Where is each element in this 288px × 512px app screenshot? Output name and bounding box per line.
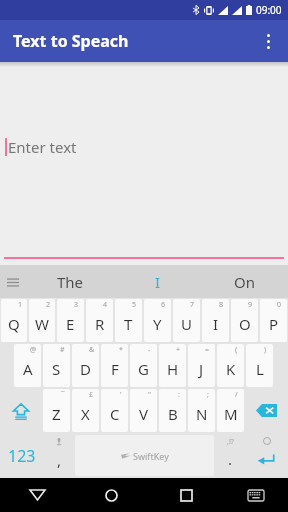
button[interactable]: , xyxy=(45,434,73,477)
button[interactable]: + xyxy=(159,344,186,387)
button[interactable]: £ xyxy=(72,389,99,432)
button[interactable]: 4 xyxy=(86,299,113,342)
staticText: E xyxy=(66,314,75,334)
button[interactable]: 6 xyxy=(144,299,171,342)
staticText: N xyxy=(196,404,208,424)
button[interactable]: Shift xyxy=(1,389,41,432)
staticText: = xyxy=(205,345,210,355)
button[interactable]: 0 xyxy=(260,299,287,342)
button[interactable]: ¯ xyxy=(43,389,70,432)
staticText: - xyxy=(148,345,151,355)
staticText: : xyxy=(178,390,180,400)
button[interactable]: # xyxy=(43,344,70,387)
staticText: . xyxy=(228,449,233,469)
button[interactable]: ,!? xyxy=(216,434,244,477)
button[interactable]: 5 xyxy=(115,299,142,342)
staticText: # xyxy=(60,345,65,355)
staticText: 3 xyxy=(74,300,79,310)
button[interactable]: : xyxy=(159,389,186,432)
staticText: ( xyxy=(235,345,238,355)
staticText: The xyxy=(57,272,84,292)
staticText: A xyxy=(23,359,33,379)
staticText: On xyxy=(234,272,255,292)
staticText: , xyxy=(57,450,62,470)
staticText: 6 xyxy=(161,300,166,310)
staticText: ; xyxy=(207,390,209,400)
staticText: 0 xyxy=(277,300,282,310)
staticText: Z xyxy=(52,404,61,424)
button[interactable]: ' xyxy=(101,389,128,432)
staticText: Enter text xyxy=(8,137,77,157)
staticText: P xyxy=(269,314,279,334)
staticText: & xyxy=(89,345,95,355)
staticText: M xyxy=(224,404,238,424)
staticText: W xyxy=(35,314,49,334)
button[interactable]: 8 xyxy=(202,299,229,342)
button[interactable]: Keyboard menu xyxy=(0,269,26,295)
staticText: Q xyxy=(8,314,20,334)
staticText: 7 xyxy=(190,300,195,310)
button[interactable]: 2 xyxy=(29,299,55,342)
staticText: I xyxy=(213,314,219,334)
staticText: / xyxy=(235,390,238,400)
staticText: 1 xyxy=(18,300,23,310)
staticText: D xyxy=(80,359,91,379)
staticText: B xyxy=(168,404,178,424)
staticText: L xyxy=(256,359,264,379)
button[interactable]: Space xyxy=(75,435,214,476)
staticText: V xyxy=(139,404,149,424)
button[interactable]: * xyxy=(101,344,128,387)
button[interactable]: Home xyxy=(74,478,149,512)
button[interactable]: I xyxy=(114,265,201,298)
button[interactable]: 3 xyxy=(57,299,84,342)
staticText: K xyxy=(226,359,236,379)
staticText: F xyxy=(111,359,119,379)
staticText: SwiftKey xyxy=(133,450,169,462)
staticText: " xyxy=(148,390,151,400)
staticText: 4 xyxy=(103,300,108,310)
button[interactable]: = xyxy=(188,344,215,387)
staticText: + xyxy=(176,345,181,355)
button[interactable]: Switch keyboard xyxy=(224,478,288,512)
button[interactable]: ( xyxy=(217,344,244,387)
button[interactable]: / xyxy=(217,389,244,432)
staticText: 8 xyxy=(219,300,224,310)
staticText: ¯ xyxy=(61,390,65,400)
staticText: R xyxy=(95,314,105,334)
button[interactable]: Recent apps xyxy=(149,478,224,512)
staticText: C xyxy=(110,404,120,424)
button[interactable]: 123 xyxy=(0,433,44,478)
staticText: @ xyxy=(30,345,37,355)
button[interactable]: - xyxy=(130,344,157,387)
staticText: S xyxy=(52,359,61,379)
button[interactable]: @ xyxy=(14,344,41,387)
button[interactable]: 1 xyxy=(1,299,27,342)
staticText: Text to Speach xyxy=(13,30,129,52)
button[interactable]: " xyxy=(130,389,157,432)
staticText: 09:00 xyxy=(256,3,282,17)
staticText: ' xyxy=(120,390,122,400)
button[interactable]: Back xyxy=(0,478,74,512)
staticText: I xyxy=(155,272,161,292)
button[interactable]: Backspace xyxy=(246,389,287,432)
staticText: * xyxy=(119,345,123,355)
button[interactable]: & xyxy=(72,344,99,387)
staticText: ,!? xyxy=(227,437,234,447)
button[interactable]: On xyxy=(201,265,288,298)
button[interactable]: ) xyxy=(246,344,273,387)
button[interactable]: Enter xyxy=(246,434,287,477)
staticText: U xyxy=(181,314,192,334)
staticText: 123 xyxy=(8,445,36,467)
staticText: H xyxy=(167,359,179,379)
staticText: O xyxy=(239,314,251,334)
button[interactable]: The xyxy=(26,265,114,298)
button[interactable]: 7 xyxy=(173,299,200,342)
button[interactable]: More options xyxy=(248,21,288,61)
button[interactable]: 9 xyxy=(231,299,258,342)
button[interactable]: ; xyxy=(188,389,215,432)
staticText: G xyxy=(138,359,149,379)
staticText: Y xyxy=(153,314,162,334)
staticText: T xyxy=(124,314,133,334)
staticText: 2 xyxy=(46,300,51,310)
staticText: X xyxy=(81,404,90,424)
